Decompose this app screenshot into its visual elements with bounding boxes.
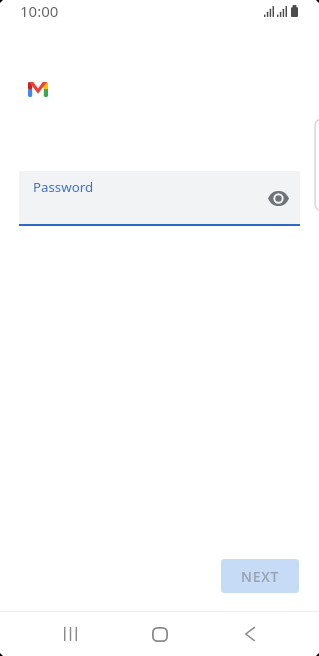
button[interactable]: Password — [19, 171, 300, 224]
staticText: Password — [33, 178, 94, 196]
button[interactable]: Show password — [266, 186, 290, 210]
staticText: 10:00 — [20, 1, 59, 21]
button[interactable]: Home — [115, 612, 204, 656]
button[interactable]: Back — [204, 612, 293, 656]
staticText: NEXT — [241, 567, 280, 586]
button[interactable]: Recents — [26, 612, 115, 656]
button[interactable]: NEXT — [221, 559, 299, 593]
